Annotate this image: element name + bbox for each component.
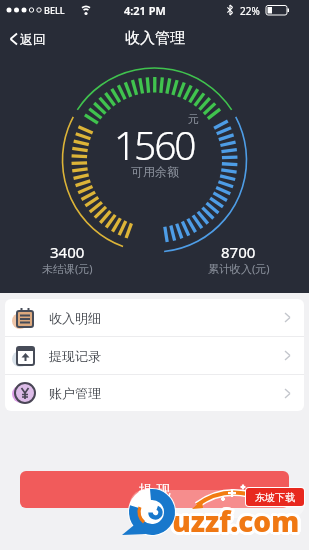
staticText: 元 bbox=[188, 112, 199, 126]
staticText: uzzf.com bbox=[173, 505, 301, 543]
staticText: uzzf.com bbox=[170, 502, 298, 540]
staticText: 账户管理 bbox=[49, 385, 101, 401]
staticText: 收入明细 bbox=[49, 310, 101, 326]
staticText: uzzf.com bbox=[172, 505, 300, 543]
staticText: 收入管理 bbox=[125, 29, 185, 48]
staticText: uzzf.com bbox=[170, 504, 298, 542]
staticText: uzzf.com bbox=[172, 502, 300, 540]
button[interactable]: 返回 bbox=[8, 31, 46, 47]
staticText: 未结课(元) bbox=[42, 261, 93, 276]
staticText: uzzf.com bbox=[169, 503, 297, 541]
button[interactable]: 收入明细 bbox=[5, 299, 304, 336]
staticText: 东坡下载 bbox=[255, 491, 295, 504]
staticText: uzzf.com bbox=[175, 502, 303, 540]
button[interactable]: 提现记录 bbox=[5, 337, 304, 374]
staticText: uzzf.com bbox=[170, 500, 298, 538]
staticText: 22% bbox=[240, 4, 260, 18]
staticText: 提 现 bbox=[139, 480, 171, 499]
staticText: uzzf.com bbox=[174, 500, 302, 538]
staticText: 8700 bbox=[221, 242, 256, 262]
staticText: uzzf.com bbox=[175, 501, 303, 539]
staticText: uzzf.com bbox=[174, 504, 302, 542]
staticText: uzzf.com bbox=[171, 499, 299, 537]
staticText: 1560 bbox=[114, 118, 195, 169]
staticText: 累计收入(元) bbox=[208, 261, 270, 276]
button[interactable]: 账户管理 bbox=[5, 375, 304, 411]
staticText: uzzf.com bbox=[172, 500, 300, 538]
staticText: 返回 bbox=[20, 31, 46, 47]
staticText: 提现记录 bbox=[49, 348, 101, 364]
staticText: 可用余额 bbox=[131, 164, 179, 179]
button[interactable]: 提 现 bbox=[20, 471, 289, 508]
staticText: 3400 bbox=[50, 242, 85, 262]
staticText: 4:21 PM bbox=[124, 3, 166, 18]
staticText: BELL bbox=[44, 4, 65, 16]
